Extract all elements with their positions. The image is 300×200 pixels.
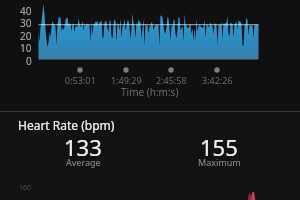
staticText: 10 <box>20 41 32 55</box>
staticText: 2:45:58 <box>156 74 187 86</box>
staticText: 3:42:26 <box>202 74 233 86</box>
staticText: 20 <box>20 29 32 43</box>
button[interactable]: 155 <box>174 126 264 176</box>
staticText: 40 <box>20 4 32 18</box>
staticText: Average <box>66 156 101 168</box>
button[interactable]: 133 <box>38 126 128 176</box>
staticText: 160 <box>19 183 32 193</box>
staticText: 155 <box>200 132 238 162</box>
staticText: Time (h:m:s) <box>121 85 179 99</box>
staticText: 0:53:01 <box>65 74 96 86</box>
staticText: 133 <box>64 132 102 162</box>
staticText: Maximum <box>198 156 241 168</box>
staticText: 0 <box>26 54 32 68</box>
staticText: Heart Rate (bpm) <box>18 117 115 133</box>
staticText: 1:49:29 <box>111 74 142 86</box>
staticText: 30 <box>20 16 32 30</box>
